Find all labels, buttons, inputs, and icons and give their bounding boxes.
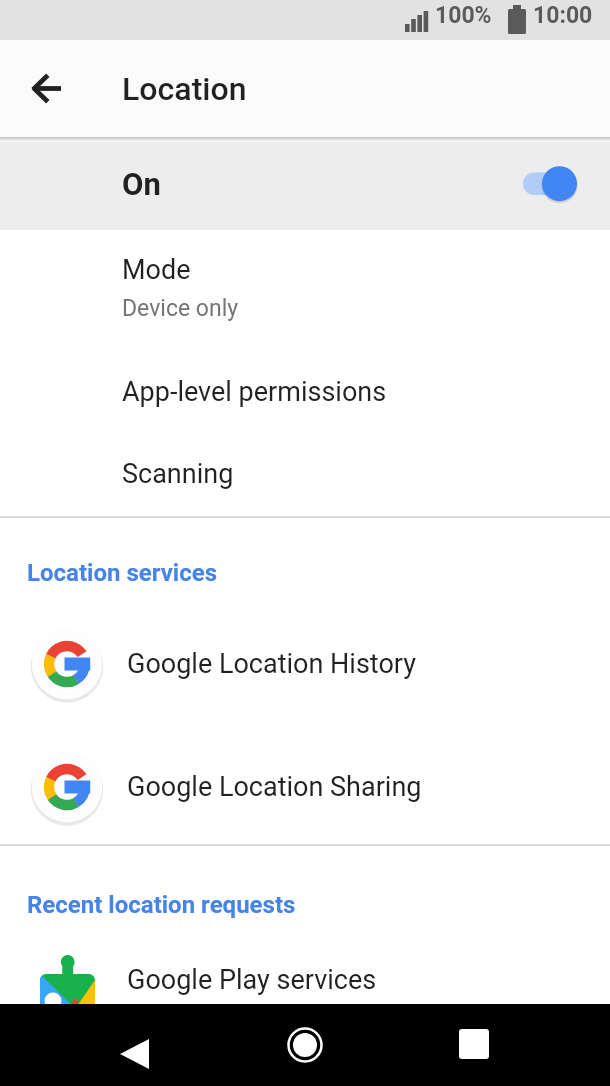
staticText: Google Play services [127, 964, 377, 996]
staticText: 100% [435, 2, 492, 29]
button[interactable] [510, 152, 600, 222]
button[interactable] [0, 941, 610, 1004]
button[interactable] [275, 1015, 335, 1075]
staticText: 10:00 [533, 2, 593, 29]
button[interactable]: On [0, 142, 610, 230]
button[interactable] [0, 725, 610, 847]
button[interactable] [444, 1014, 504, 1074]
staticText: Google Location Sharing [127, 771, 422, 803]
button[interactable] [0, 433, 610, 516]
staticText: Location services [27, 559, 218, 587]
button[interactable] [0, 603, 610, 725]
staticText: Device only [122, 295, 239, 322]
button[interactable] [0, 350, 610, 433]
button[interactable] [105, 1014, 165, 1074]
staticText: App-level permissions [122, 376, 387, 408]
staticText: Mode [122, 254, 191, 286]
button[interactable] [20, 61, 75, 116]
staticText: Scanning [122, 458, 234, 490]
staticText: Location [122, 70, 247, 108]
staticText: Recent location requests [27, 891, 296, 919]
staticText: Google Location History [127, 648, 416, 680]
button[interactable] [0, 230, 610, 350]
staticText: On [122, 166, 161, 202]
